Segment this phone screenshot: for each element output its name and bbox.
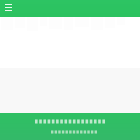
button[interactable]: Footer links [51, 130, 97, 134]
button[interactable]: Open navigation menu [3, 2, 14, 13]
button[interactable]: Footer links [35, 119, 105, 124]
